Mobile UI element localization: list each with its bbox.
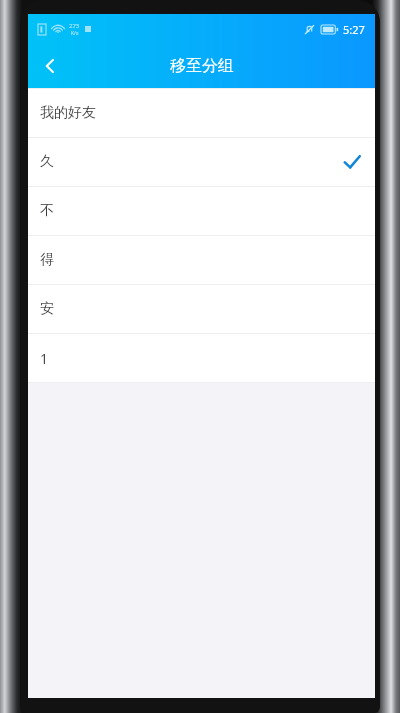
staticText: 1	[40, 349, 49, 368]
staticText: 我的好友	[40, 104, 96, 122]
button[interactable]: 安	[28, 285, 375, 333]
staticText: K/s	[71, 30, 79, 37]
staticText: 得	[40, 251, 54, 269]
staticText: 移至分组	[170, 56, 234, 76]
button[interactable]: 1	[28, 334, 375, 382]
button[interactable]: 我的好友	[28, 89, 375, 137]
staticText: 久	[40, 153, 54, 171]
staticText: 273	[69, 22, 80, 30]
staticText: 5:27	[343, 22, 365, 37]
staticText: 不	[40, 202, 54, 220]
staticText: 安	[40, 300, 54, 318]
button[interactable]: 不	[28, 187, 375, 235]
button[interactable]: 久	[28, 138, 375, 186]
button[interactable]: 得	[28, 236, 375, 284]
button[interactable]: Back	[28, 44, 72, 88]
